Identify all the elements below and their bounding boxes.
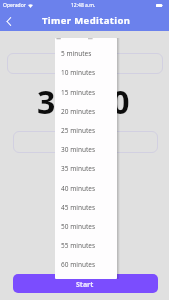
staticText: 5 minutes <box>61 49 92 58</box>
staticText: 30:00 <box>37 80 133 124</box>
staticText: Start <box>76 280 94 290</box>
staticText: 55 minutes <box>61 241 96 250</box>
button[interactable]: 25 minutes <box>55 121 117 140</box>
button[interactable]: 35 minutes <box>55 159 117 178</box>
button[interactable]: 45 minutes <box>55 198 117 217</box>
staticText: 12:48 a.m. <box>71 2 96 9</box>
staticText: 20 minutes <box>61 107 96 116</box>
button[interactable]: 55 minutes <box>55 236 117 255</box>
button[interactable]: 50 minutes <box>55 217 117 236</box>
button[interactable]: 40 minutes <box>55 179 117 198</box>
staticText: 35 minutes <box>61 164 96 173</box>
staticText: 45 minutes <box>61 203 96 212</box>
button[interactable]: 5 minutes <box>55 44 117 63</box>
button[interactable]: Start <box>13 274 158 293</box>
button[interactable]: Back <box>0 11 18 31</box>
staticText: 10 minutes <box>61 68 96 77</box>
button[interactable]: 20 minutes <box>55 102 117 121</box>
staticText: 15 minutes <box>61 88 96 97</box>
staticText: 30 minutes <box>61 145 96 154</box>
button[interactable]: 15 minutes <box>55 83 117 102</box>
button[interactable]: 30 minutes <box>55 140 117 159</box>
staticText: Timer Meditation <box>42 14 131 27</box>
staticText: Operador <box>3 2 26 9</box>
button[interactable]: 10 minutes <box>55 63 117 82</box>
staticText: 60 minutes <box>61 260 96 269</box>
staticText: 50 minutes <box>61 222 96 231</box>
staticText: 40 minutes <box>61 184 96 193</box>
button[interactable] <box>7 53 163 74</box>
button[interactable] <box>13 131 158 153</box>
staticText: 25 minutes <box>61 126 96 135</box>
button[interactable]: 60 minutes <box>55 255 117 274</box>
